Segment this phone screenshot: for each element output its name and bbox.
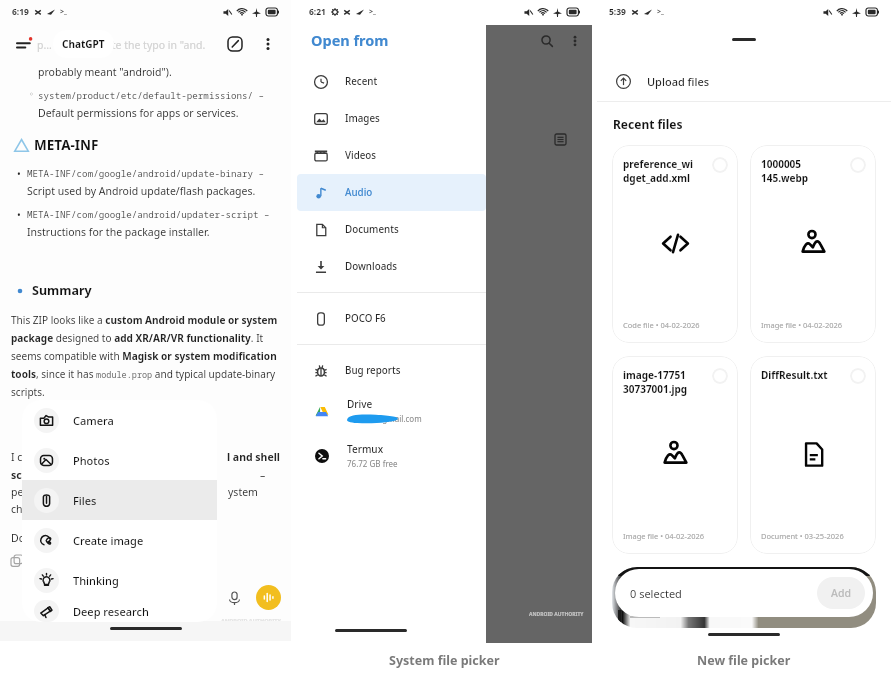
staticText: Recent — [345, 75, 378, 88]
staticText: This ZIP looks like a custom Android mod… — [11, 313, 278, 399]
staticText: • — [17, 208, 21, 222]
staticText: 5:39 — [609, 6, 626, 18]
staticText: Deep research — [73, 604, 149, 619]
button[interactable]: Photos — [22, 440, 217, 480]
button[interactable]: Voice input — [223, 587, 245, 609]
button[interactable]: preference_wi dget_add.xml — [612, 145, 738, 343]
button[interactable]: New chat — [222, 31, 248, 57]
staticText: 1000005 145.webp — [761, 157, 850, 185]
staticText: >_ — [369, 7, 376, 17]
button[interactable]: 1000005 145.webp — [750, 145, 876, 343]
staticText: META-INF/com/google/android/updater-scri… — [27, 208, 270, 221]
button[interactable]: Menu — [12, 31, 38, 57]
staticText: META-INF — [34, 136, 99, 154]
button[interactable]: Documents — [297, 211, 486, 248]
staticText: pe — [11, 485, 24, 499]
staticText: sc — [11, 468, 22, 482]
staticText: gmail.com — [347, 413, 422, 424]
button[interactable]: Voice mode — [256, 585, 281, 610]
staticText: I c — [11, 450, 23, 464]
staticText: Upload files — [647, 74, 710, 89]
staticText: Dc — [11, 531, 24, 545]
button[interactable]: Camera — [22, 400, 217, 440]
button[interactable]: Search — [537, 31, 557, 51]
button[interactable]: ChatGPT — [53, 30, 114, 58]
staticText: Open from — [311, 30, 389, 50]
staticText: Add — [831, 586, 851, 600]
staticText: New file picker — [697, 652, 791, 669]
button[interactable]: More options — [565, 31, 585, 51]
staticText: Image file • 04-02-2026 — [761, 320, 843, 330]
button[interactable]: Drive — [297, 389, 486, 433]
staticText: Bug reports — [345, 364, 401, 377]
staticText: Document • 03-25-2026 — [761, 531, 844, 541]
button[interactable]: DiffResult.txt — [750, 356, 876, 554]
button[interactable]: image-17751 30737001.jpg — [612, 356, 738, 554]
staticText: • — [17, 167, 21, 181]
staticText: 0 selected — [630, 586, 682, 601]
staticText: Images — [345, 112, 380, 125]
button[interactable]: Termux — [297, 433, 486, 477]
button[interactable]: Recent — [297, 63, 486, 100]
button[interactable]: Videos — [297, 137, 486, 174]
staticText: l and shell — [227, 450, 280, 464]
button[interactable]: More options — [257, 33, 279, 55]
staticText: ANDROID AUTHORITY — [221, 617, 281, 624]
button[interactable]: Create image — [22, 520, 217, 560]
staticText: Thinking — [73, 573, 119, 588]
staticText: ch — [11, 502, 23, 516]
staticText: – — [260, 468, 266, 482]
staticText: Create image — [73, 533, 144, 548]
staticText: Documents — [345, 223, 399, 236]
staticText: image-17751 30737001.jpg — [623, 368, 712, 396]
staticText: probably meant "android"). — [38, 65, 172, 79]
staticText: Camera — [73, 413, 114, 428]
button[interactable]: Deep research — [22, 600, 217, 622]
staticText: META-INF/com/google/android/update-binar… — [27, 167, 265, 180]
staticText: Script used by Android update/flash pack… — [27, 184, 256, 198]
staticText: preference_wi dget_add.xml — [623, 157, 712, 185]
staticText: POCO F6 — [345, 312, 386, 325]
staticText: 6:21 — [309, 6, 326, 18]
button[interactable]: Thinking — [22, 560, 217, 600]
staticText: Files — [73, 493, 97, 508]
staticText: ystem — [228, 485, 258, 499]
staticText: DiffResult.txt — [761, 368, 850, 382]
staticText: >_ — [60, 7, 67, 17]
staticText: Videos — [345, 149, 377, 162]
staticText: ANDROID AUTHORITY — [529, 611, 584, 618]
staticText: system/product/etc/default-permissions/ … — [38, 89, 265, 102]
staticText: 76.72 GB free — [347, 458, 398, 469]
button[interactable]: Files — [22, 480, 217, 520]
staticText: p... nfig (note the typo in "and. — [37, 38, 206, 52]
staticText: Default permissions for apps or services… — [38, 106, 239, 120]
staticText: Summary — [32, 282, 92, 299]
staticText: ◦ — [29, 90, 34, 99]
staticText: Drive — [347, 397, 373, 411]
staticText: Instructions for the package installer. — [27, 225, 210, 239]
button[interactable]: Upload files — [597, 66, 891, 96]
staticText: Photos — [73, 453, 110, 468]
staticText: System file picker — [389, 652, 500, 669]
button[interactable]: Images — [297, 100, 486, 137]
staticText: Downloads — [345, 260, 398, 273]
button[interactable]: Downloads — [297, 248, 486, 285]
staticText: Termux — [347, 442, 384, 456]
staticText: ChatGPT — [62, 37, 105, 51]
staticText: Audio — [345, 186, 373, 199]
staticText: Recent files — [613, 116, 683, 132]
staticText: Code file • 04-02-2026 — [623, 320, 700, 330]
staticText: >_ — [657, 7, 664, 17]
staticText: Image file • 04-02-2026 — [623, 531, 705, 541]
button[interactable]: Audio — [297, 174, 486, 211]
button[interactable]: Add — [817, 577, 865, 609]
staticText: 6:19 — [12, 6, 29, 18]
button[interactable]: Bug reports — [297, 352, 486, 389]
button[interactable]: POCO F6 — [297, 300, 486, 337]
